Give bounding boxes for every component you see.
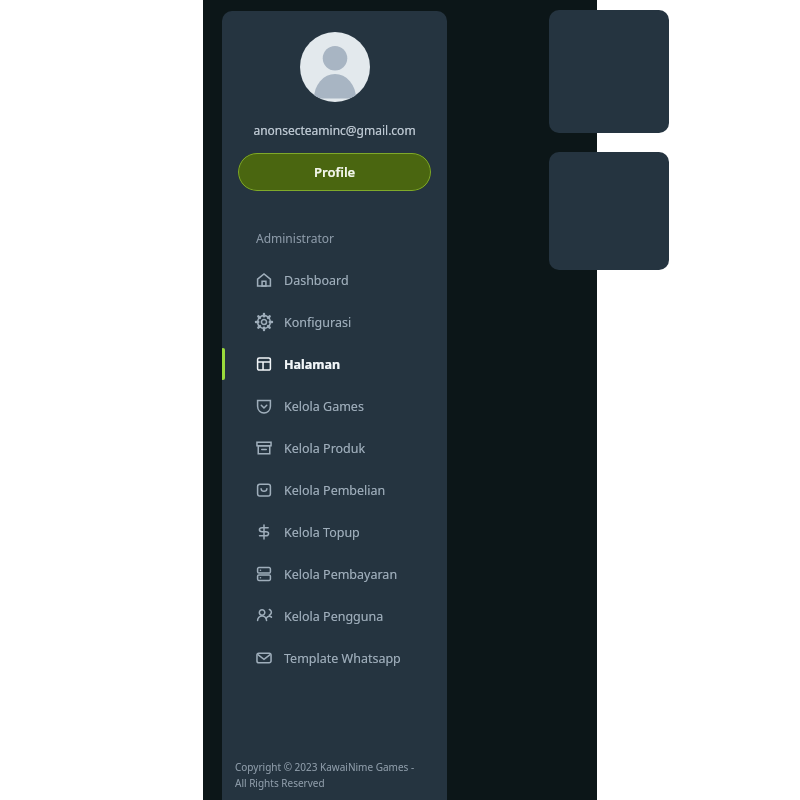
staticText: Kelola Topup bbox=[284, 524, 360, 541]
staticText: Konfigurasi bbox=[284, 314, 352, 331]
staticText: Kelola Pembelian bbox=[284, 482, 386, 499]
button[interactable]: Kelola Pembelian bbox=[222, 469, 447, 511]
staticText: Kelola Produk bbox=[284, 440, 366, 457]
button[interactable]: Profile bbox=[238, 153, 431, 191]
button[interactable]: Kelola Topup bbox=[222, 511, 447, 553]
staticText: Copyright © 2023 KawaiNime Games - All R… bbox=[235, 760, 427, 789]
staticText: Kelola Pembayaran bbox=[284, 566, 398, 583]
button[interactable]: Kelola Pengguna bbox=[222, 595, 447, 637]
staticText: Kelola Games bbox=[284, 398, 364, 415]
staticText: Administrator bbox=[256, 230, 334, 246]
button[interactable]: Dashboard bbox=[222, 259, 447, 301]
staticText: Halaman bbox=[284, 356, 341, 373]
button[interactable]: Kelola Games bbox=[222, 385, 447, 427]
staticText: Dashboard bbox=[284, 272, 349, 289]
staticText: anonsecteaminc@gmail.com bbox=[253, 122, 416, 138]
button[interactable]: Template Whatsapp bbox=[222, 637, 447, 679]
staticText: Template Whatsapp bbox=[284, 650, 401, 667]
button[interactable]: Halaman bbox=[222, 343, 447, 385]
staticText: Kelola Pengguna bbox=[284, 608, 384, 625]
button[interactable]: Kelola Produk bbox=[222, 427, 447, 469]
button[interactable]: Kelola Pembayaran bbox=[222, 553, 447, 595]
button[interactable]: Konfigurasi bbox=[222, 301, 447, 343]
staticText: Profile bbox=[314, 163, 356, 181]
other: Profile photo bbox=[300, 32, 370, 102]
